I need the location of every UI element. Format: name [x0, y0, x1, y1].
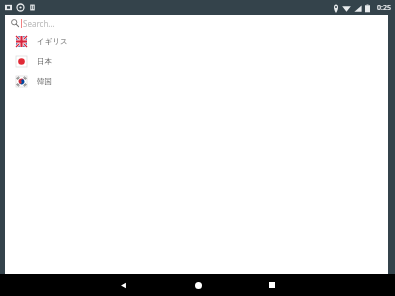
staticText: 0:25 [377, 3, 391, 13]
button[interactable]: 日本 [5, 51, 388, 71]
staticText: イギリス [37, 37, 68, 46]
button[interactable]: Home [185, 274, 211, 296]
button[interactable]: Back [110, 274, 136, 296]
button[interactable]: 韓国 [5, 71, 388, 91]
button[interactable]: Search... [5, 15, 388, 31]
staticText: 日本 [37, 57, 52, 66]
button[interactable]: Recent apps [259, 274, 285, 296]
staticText: Search... [23, 18, 55, 29]
button[interactable]: イギリス [5, 31, 388, 51]
staticText: 韓国 [37, 77, 52, 86]
